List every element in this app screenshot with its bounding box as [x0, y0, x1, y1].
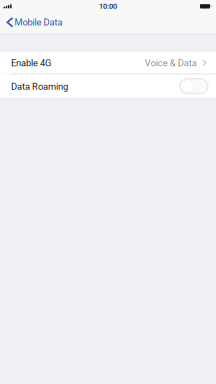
staticText: Enable 4G: [11, 58, 51, 68]
staticText: 10:00: [99, 2, 117, 11]
staticText: Mobile Data: [15, 17, 63, 28]
button[interactable]: Mobile Data: [0, 12, 70, 34]
button[interactable]: Enable 4G: [0, 52, 216, 74]
button[interactable]: Data Roaming: [0, 75, 216, 98]
staticText: Data Roaming: [11, 81, 68, 92]
staticText: Voice & Data: [145, 58, 197, 68]
